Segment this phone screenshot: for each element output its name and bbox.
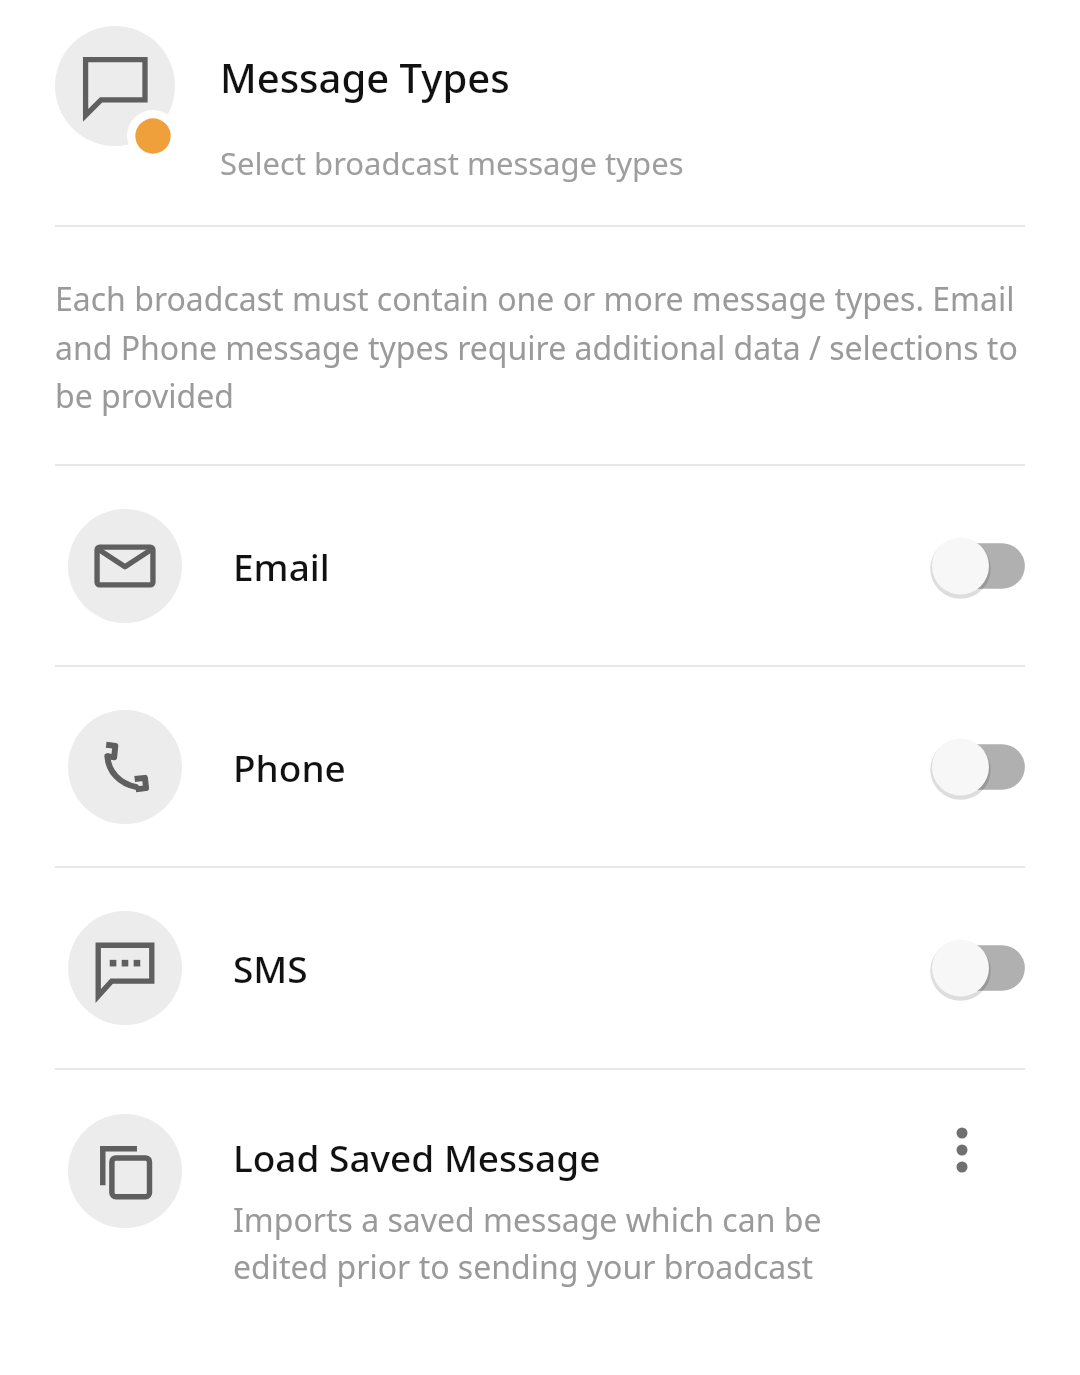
button[interactable]: Phone: [0, 667, 1080, 866]
button[interactable]: Load Saved Message: [0, 1070, 1080, 1375]
button[interactable]: More options: [912, 1104, 1012, 1204]
staticText: Message Types: [220, 50, 510, 104]
staticText: Each broadcast must contain one or more …: [55, 277, 1030, 417]
button[interactable]: Email: [0, 466, 1080, 665]
button[interactable]: Email toggle: [924, 528, 1028, 604]
staticText: Select broadcast message types: [220, 142, 684, 184]
staticText: Load Saved Message: [233, 1132, 601, 1182]
staticText: Imports a saved message which can be edi…: [233, 1198, 898, 1288]
staticText: SMS: [233, 943, 308, 993]
button[interactable]: SMS: [0, 868, 1080, 1068]
staticText: Email: [233, 541, 330, 591]
staticText: Phone: [233, 742, 346, 792]
button[interactable]: Phone toggle: [924, 729, 1028, 805]
button[interactable]: SMS toggle: [924, 930, 1028, 1006]
